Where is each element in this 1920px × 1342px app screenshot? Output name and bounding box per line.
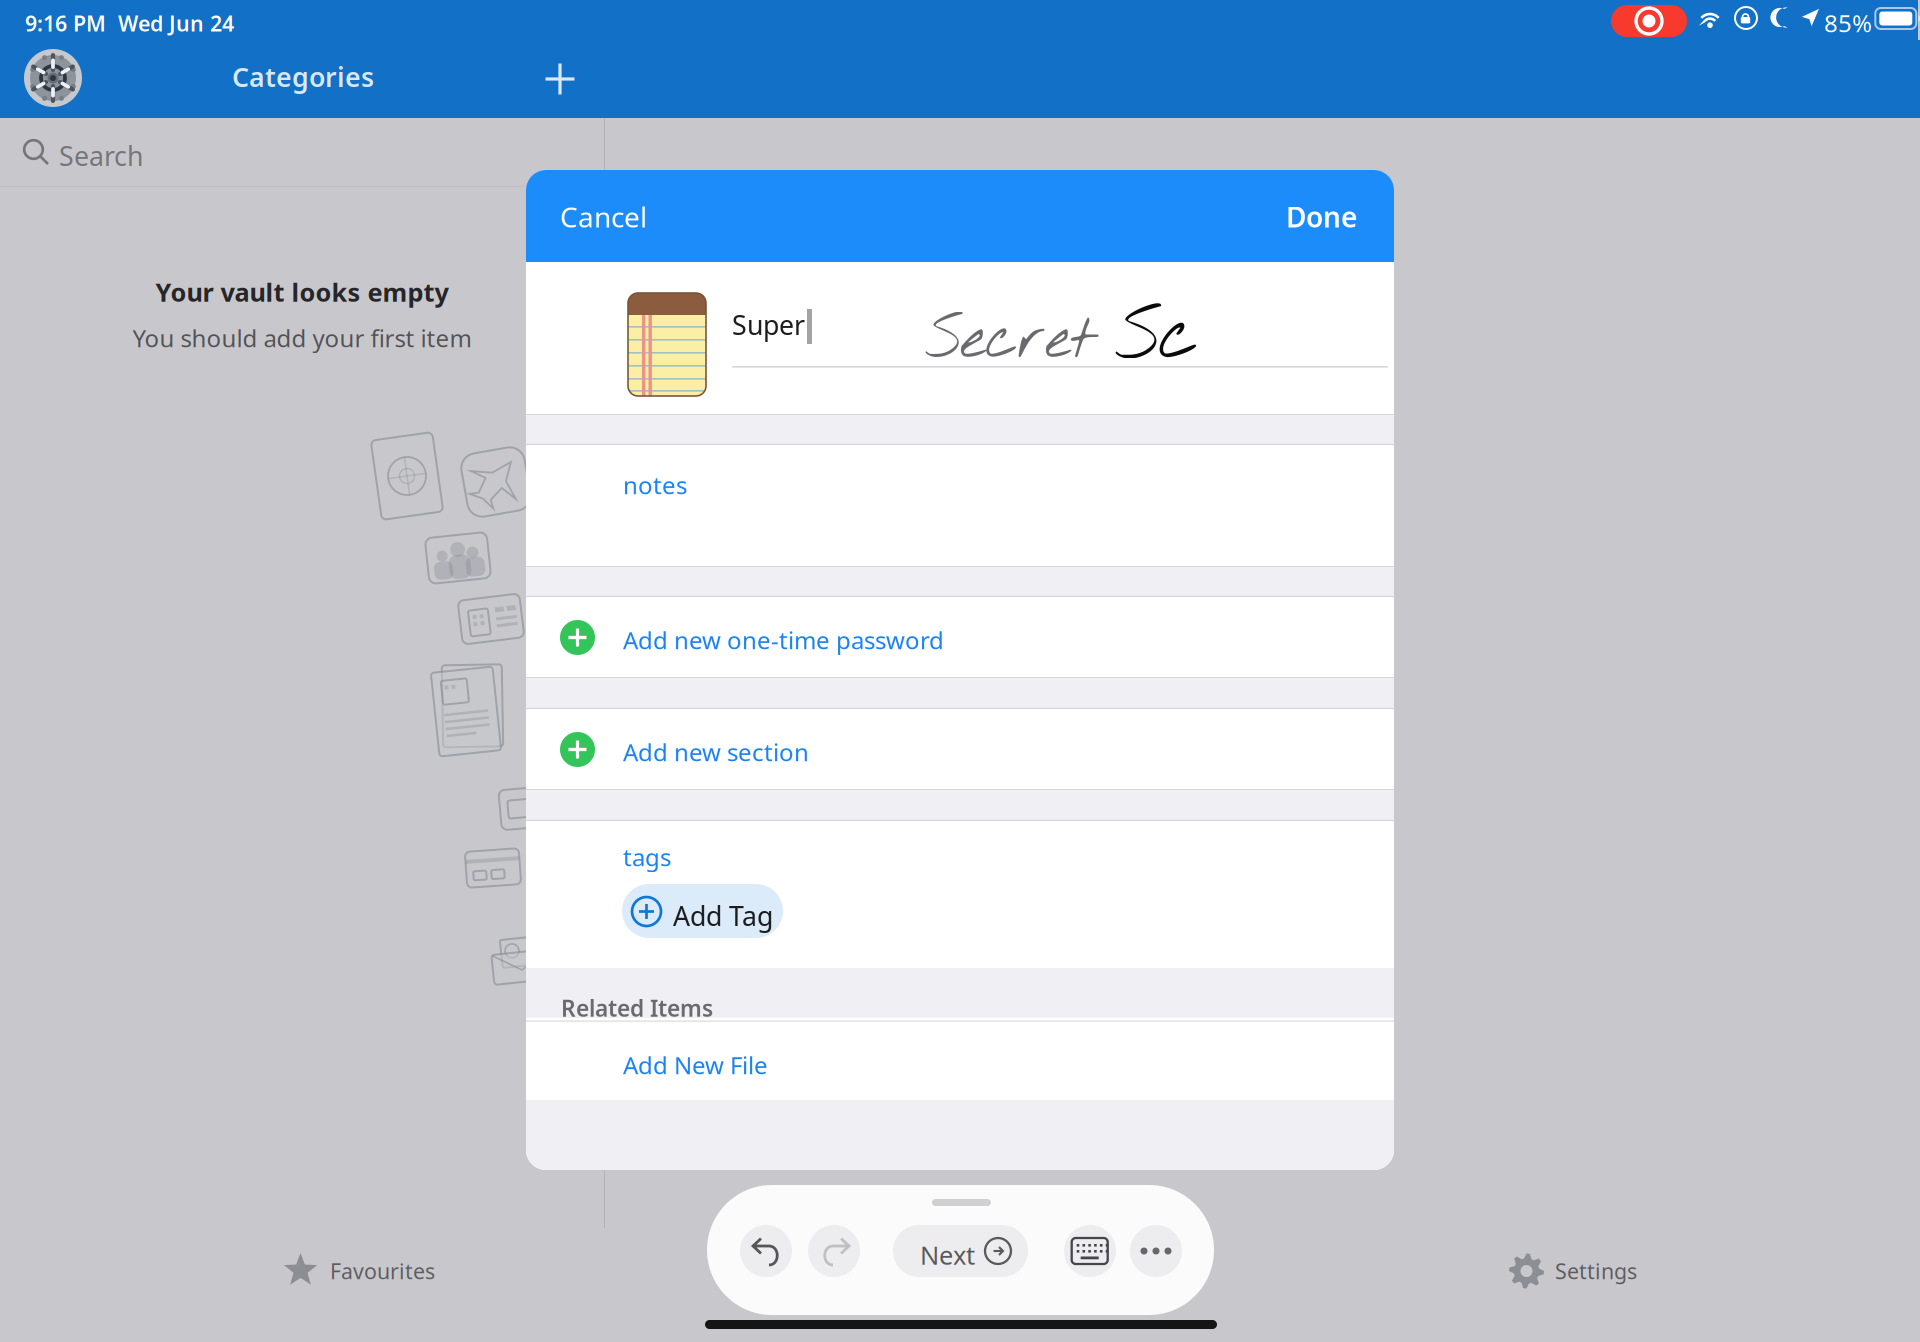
button[interactable]: Done [1276, 186, 1367, 247]
staticText: Next [920, 1238, 975, 1272]
button[interactable]: Add item [534, 53, 586, 105]
button[interactable]: Next [893, 1225, 1028, 1277]
staticText: Tags [949, 1257, 994, 1285]
staticText: Add new one-time password [623, 624, 944, 656]
button[interactable]: Undo [740, 1225, 792, 1277]
staticText: Password [799, 520, 1396, 686]
staticText: Password [800, 520, 1397, 686]
staticText: Password [801, 521, 1398, 687]
staticText: Password [799, 521, 1396, 687]
staticText: Related Items [561, 993, 713, 1023]
staticText: 9:16 PM [25, 9, 106, 37]
staticText: Settings [1555, 1257, 1637, 1285]
staticText: Password [801, 520, 1398, 686]
staticText: Cancel [560, 198, 647, 235]
staticText: 85% [1824, 7, 1872, 39]
button[interactable]: Keyboard [1064, 1225, 1116, 1277]
button[interactable]: Cancel [550, 186, 657, 247]
staticText: Password [800, 521, 1397, 688]
staticText: Your vault looks empty [155, 275, 448, 309]
staticText: Add Tag [673, 898, 773, 933]
staticText: Search [59, 138, 143, 173]
button[interactable]: Add new one-time password [526, 597, 1394, 677]
button[interactable]: More options [1130, 1225, 1182, 1277]
staticText: Done [1286, 198, 1357, 235]
staticText: Password [799, 519, 1396, 685]
button[interactable]: Add Tag [622, 884, 783, 938]
staticText: Secret [925, 302, 1095, 380]
staticText: Categories [232, 59, 374, 94]
staticText: Super [732, 307, 805, 342]
staticText: Password [800, 519, 1397, 685]
button[interactable]: Settings [1509, 1241, 1637, 1301]
button[interactable]: Vault [24, 49, 82, 107]
staticText: notes [623, 469, 687, 501]
button[interactable]: Favourites [283, 1241, 435, 1301]
button[interactable]: Add new section [526, 709, 1394, 789]
staticText: Favourites [330, 1257, 435, 1285]
button[interactable]: Add New File [526, 1022, 1394, 1100]
staticText: You should add your first item [132, 322, 471, 354]
staticText: tags [623, 841, 671, 873]
staticText: Sc [1115, 290, 1197, 386]
staticText: Add new section [623, 736, 809, 768]
staticText: Password [801, 519, 1398, 685]
button[interactable]: Tags [904, 1241, 994, 1301]
staticText: Wed Jun 24 [118, 9, 234, 37]
staticText: Add New File [623, 1049, 768, 1081]
button[interactable]: Redo [808, 1225, 860, 1277]
